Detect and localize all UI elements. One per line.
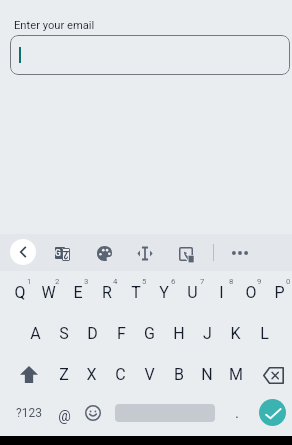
staticText: 7 [200, 277, 205, 286]
button[interactable]: C [107, 355, 134, 393]
button[interactable]: P [266, 273, 292, 311]
button[interactable]: ?123 [12, 396, 46, 430]
staticText: F [117, 324, 126, 343]
staticText: 6 [171, 277, 176, 286]
button[interactable]: A [22, 314, 49, 352]
button[interactable]: F [108, 314, 135, 352]
staticText: 9 [257, 277, 262, 286]
button[interactable]: I [208, 273, 235, 311]
staticText: Z [59, 365, 69, 384]
staticText: G [55, 248, 61, 257]
staticText: J [203, 324, 212, 343]
button[interactable]: M [222, 355, 249, 393]
button[interactable]: K [222, 314, 249, 352]
button[interactable]: T [122, 273, 149, 311]
staticText: X [86, 365, 97, 384]
button[interactable]: W [35, 273, 62, 311]
button[interactable]: R [93, 273, 120, 311]
button[interactable]: Back [10, 239, 36, 265]
staticText: T [131, 283, 141, 302]
button[interactable]: Emoji [79, 396, 107, 430]
button[interactable]: B [165, 355, 192, 393]
button[interactable]: S [50, 314, 77, 352]
staticText: E [73, 283, 83, 302]
staticText: 0 [286, 277, 291, 286]
button[interactable]: V [136, 355, 163, 393]
button[interactable]: Z [50, 355, 77, 393]
staticText: A [30, 324, 41, 343]
button[interactable]: U [179, 273, 206, 311]
button[interactable]: E [64, 273, 91, 311]
staticText: Enter your email [14, 19, 95, 32]
staticText: K [230, 324, 241, 343]
button[interactable]: Y [150, 273, 177, 311]
staticText: 3 [84, 277, 89, 286]
button[interactable]: Theme [90, 239, 118, 267]
staticText: I [219, 283, 224, 302]
staticText: B [174, 365, 184, 384]
button[interactable]: G [136, 314, 163, 352]
button[interactable]: Translate [48, 239, 76, 267]
button[interactable]: Q [6, 273, 33, 311]
button[interactable]: Move cursor [131, 239, 159, 267]
staticText: 1 [27, 277, 32, 286]
button[interactable] [10, 35, 290, 75]
staticText: H [173, 324, 185, 343]
staticText: ?123 [16, 406, 42, 420]
button[interactable]: Enter [259, 399, 286, 426]
staticText: V [144, 365, 155, 384]
staticText: 8 [229, 277, 234, 286]
button[interactable]: J [194, 314, 221, 352]
staticText: Y [159, 283, 169, 302]
button[interactable]: D [79, 314, 106, 352]
button[interactable]: @ [50, 399, 78, 433]
staticText: R [102, 283, 112, 302]
button[interactable]: . [224, 396, 250, 430]
button[interactable]: O [237, 273, 264, 311]
staticText: Q [14, 283, 26, 302]
staticText: @ [58, 408, 71, 424]
button[interactable]: X [78, 355, 105, 393]
button[interactable]: L [251, 314, 278, 352]
button[interactable]: N [193, 355, 220, 393]
staticText: 5 [142, 277, 147, 286]
staticText: G [144, 324, 155, 343]
staticText: 2 [55, 277, 60, 286]
staticText: M [229, 365, 243, 384]
button[interactable]: Backspace [258, 356, 288, 394]
staticText: S [59, 324, 69, 343]
staticText: L [260, 324, 269, 343]
button[interactable]: More options [225, 240, 255, 266]
staticText: P [274, 283, 285, 302]
staticText: C [115, 365, 126, 384]
staticText: W [41, 283, 56, 302]
staticText: N [201, 365, 213, 384]
button[interactable]: H [165, 314, 192, 352]
staticText: U [187, 283, 198, 302]
staticText: O [245, 283, 257, 302]
staticText: D [87, 324, 98, 343]
button[interactable]: Shift [14, 355, 43, 393]
staticText: 4 [113, 277, 118, 286]
staticText: . [235, 404, 239, 422]
button[interactable]: Select [172, 240, 200, 268]
